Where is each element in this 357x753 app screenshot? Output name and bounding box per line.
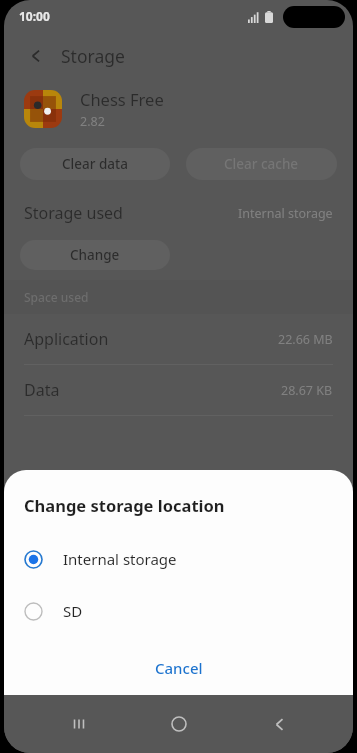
staticText: 28.67 KB xyxy=(281,382,333,399)
staticText: Clear cache xyxy=(224,155,299,173)
staticText: Data xyxy=(24,379,60,401)
staticText: Application xyxy=(24,328,109,350)
button[interactable]: Application xyxy=(24,314,333,364)
staticText: 2.82 xyxy=(80,113,105,130)
staticText: Space used xyxy=(24,289,89,305)
button[interactable]: Back xyxy=(229,700,329,748)
staticText: Internal storage xyxy=(238,205,333,222)
button[interactable]: Back xyxy=(22,42,50,70)
button[interactable]: SD xyxy=(24,591,353,631)
button[interactable]: Internal storage xyxy=(24,539,353,579)
button[interactable]: Clear data xyxy=(20,148,170,180)
staticText: Change xyxy=(70,246,120,264)
staticText: Storage used xyxy=(24,202,123,224)
button[interactable]: Storage used xyxy=(24,188,333,238)
button[interactable]: Clear cache xyxy=(186,148,337,180)
button[interactable]: Cancel xyxy=(4,647,353,689)
staticText: Clear data xyxy=(62,155,128,173)
staticText: Storage xyxy=(61,44,125,68)
button[interactable]: Change xyxy=(20,240,170,270)
staticText: 10:00 xyxy=(19,8,50,24)
button[interactable]: Data xyxy=(24,365,333,415)
button[interactable]: Home xyxy=(129,700,229,748)
staticText: Change storage location xyxy=(24,494,225,516)
staticText: Internal storage xyxy=(63,549,177,569)
staticText: 22.66 MB xyxy=(278,331,333,348)
staticText: Cancel xyxy=(155,658,203,678)
staticText: SD xyxy=(63,601,83,621)
button[interactable]: Recents xyxy=(28,700,129,748)
staticText: Chess Free xyxy=(80,88,164,110)
